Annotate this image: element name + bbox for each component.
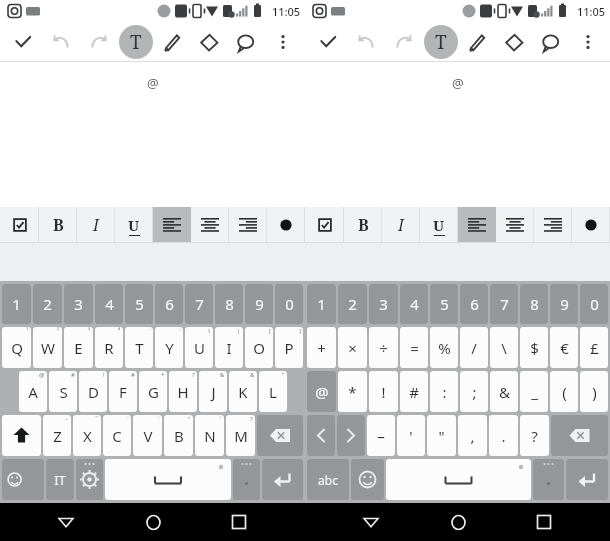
button[interactable]: 5 [430, 284, 458, 324]
button[interactable]: I [77, 207, 115, 243]
button[interactable]: Align right [229, 207, 267, 243]
button[interactable]: K [229, 371, 257, 412]
button[interactable]: * [338, 371, 367, 412]
button[interactable]: : [430, 371, 458, 412]
button[interactable]: P [275, 327, 303, 368]
button[interactable]: ) [580, 371, 608, 412]
button[interactable]: + [307, 327, 336, 368]
button[interactable]: 7 [490, 284, 518, 324]
button[interactable]: Comment [227, 22, 264, 62]
button[interactable]: Done [4, 22, 42, 62]
button[interactable]: Enter [262, 459, 303, 500]
button[interactable]: Checklist [0, 207, 39, 243]
button[interactable]: L [259, 371, 287, 412]
button[interactable]: 2 [33, 284, 62, 324]
button[interactable]: Pen [153, 22, 190, 62]
button[interactable]: Done [309, 22, 347, 62]
button[interactable]: M [226, 415, 255, 456]
button[interactable]: ; [460, 371, 488, 412]
button[interactable]: Y [155, 327, 183, 368]
button[interactable]: # [400, 371, 428, 412]
button[interactable]: 9 [550, 284, 578, 324]
button[interactable]: Pen [458, 22, 495, 62]
button[interactable]: \ [490, 327, 518, 368]
button[interactable]: Home [133, 503, 173, 541]
button[interactable]: Period [233, 459, 260, 500]
button[interactable]: / [460, 327, 488, 368]
button[interactable]: 8 [215, 284, 243, 324]
button[interactable]: ' [397, 415, 425, 456]
button[interactable]: Redo [385, 22, 423, 62]
button[interactable]: . [489, 415, 518, 456]
button[interactable]: 1 [307, 284, 336, 324]
button[interactable]: 3 [369, 284, 398, 324]
button[interactable]: A [19, 371, 47, 412]
button[interactable]: ( [550, 371, 578, 412]
button[interactable]: Align center [496, 207, 534, 243]
button[interactable]: 6 [155, 284, 183, 324]
button[interactable]: T [424, 25, 458, 59]
button[interactable]: V [133, 415, 162, 456]
button[interactable]: C [103, 415, 131, 456]
button[interactable]: Bullet colour [267, 207, 305, 243]
button[interactable]: Align center [191, 207, 229, 243]
button[interactable]: D [79, 371, 107, 412]
button[interactable]: Recents [524, 503, 564, 541]
button[interactable]: € [550, 327, 578, 368]
button[interactable]: O [245, 327, 273, 368]
button[interactable]: % [430, 327, 458, 368]
button[interactable]: B [344, 207, 382, 243]
button[interactable]: Q [2, 327, 31, 368]
button[interactable]: ÷ [369, 327, 398, 368]
button[interactable]: Settings [76, 459, 103, 500]
button[interactable]: Eraser [190, 22, 227, 62]
button[interactable]: Redo [80, 22, 118, 62]
button[interactable]: Comment [532, 22, 569, 62]
button[interactable]: IT [46, 459, 74, 500]
button[interactable]: 3 [64, 284, 93, 324]
button[interactable]: 2 [338, 284, 367, 324]
button[interactable]: Back [351, 503, 391, 541]
button[interactable]: $ [520, 327, 548, 368]
button[interactable]: Undo [42, 22, 80, 62]
button[interactable]: More options [264, 22, 301, 62]
button[interactable]: S [49, 371, 77, 412]
button[interactable]: Back [46, 503, 86, 541]
button[interactable]: T [119, 25, 153, 59]
button[interactable]: Eraser [495, 22, 532, 62]
button[interactable]: Align left [458, 207, 496, 243]
button[interactable]: Bullet colour [572, 207, 610, 243]
button[interactable]: Recents [219, 503, 259, 541]
button[interactable]: E [64, 327, 93, 368]
button[interactable]: F [109, 371, 137, 412]
button[interactable]: ? [520, 415, 549, 456]
button[interactable]: 4 [400, 284, 428, 324]
button[interactable]: N [195, 415, 224, 456]
button[interactable]: = [400, 327, 428, 368]
button[interactable]: Z [43, 415, 71, 456]
button[interactable]: 7 [185, 284, 213, 324]
button[interactable]: Space [105, 459, 231, 500]
button[interactable]: _ [520, 371, 548, 412]
button[interactable]: Next page [337, 415, 365, 456]
button[interactable]: Align right [534, 207, 572, 243]
button[interactable]: 4 [95, 284, 123, 324]
button[interactable]: J [199, 371, 227, 412]
button[interactable]: Previous page [307, 415, 335, 456]
button[interactable]: Checklist [305, 207, 344, 243]
button[interactable]: 9 [245, 284, 273, 324]
button[interactable]: U [420, 207, 458, 243]
button[interactable]: Delete [257, 415, 303, 456]
button[interactable]: × [338, 327, 367, 368]
button[interactable]: Home [438, 503, 478, 541]
button[interactable]: B [39, 207, 77, 243]
button[interactable]: 0 [275, 284, 303, 324]
button[interactable]: 8 [520, 284, 548, 324]
button[interactable]: Space [386, 459, 531, 500]
button[interactable]: & [490, 371, 518, 412]
button[interactable]: Enter [566, 459, 608, 500]
button[interactable]: £ [580, 327, 608, 368]
button[interactable]: I [382, 207, 420, 243]
button[interactable]: U [185, 327, 213, 368]
button[interactable]: W [33, 327, 62, 368]
